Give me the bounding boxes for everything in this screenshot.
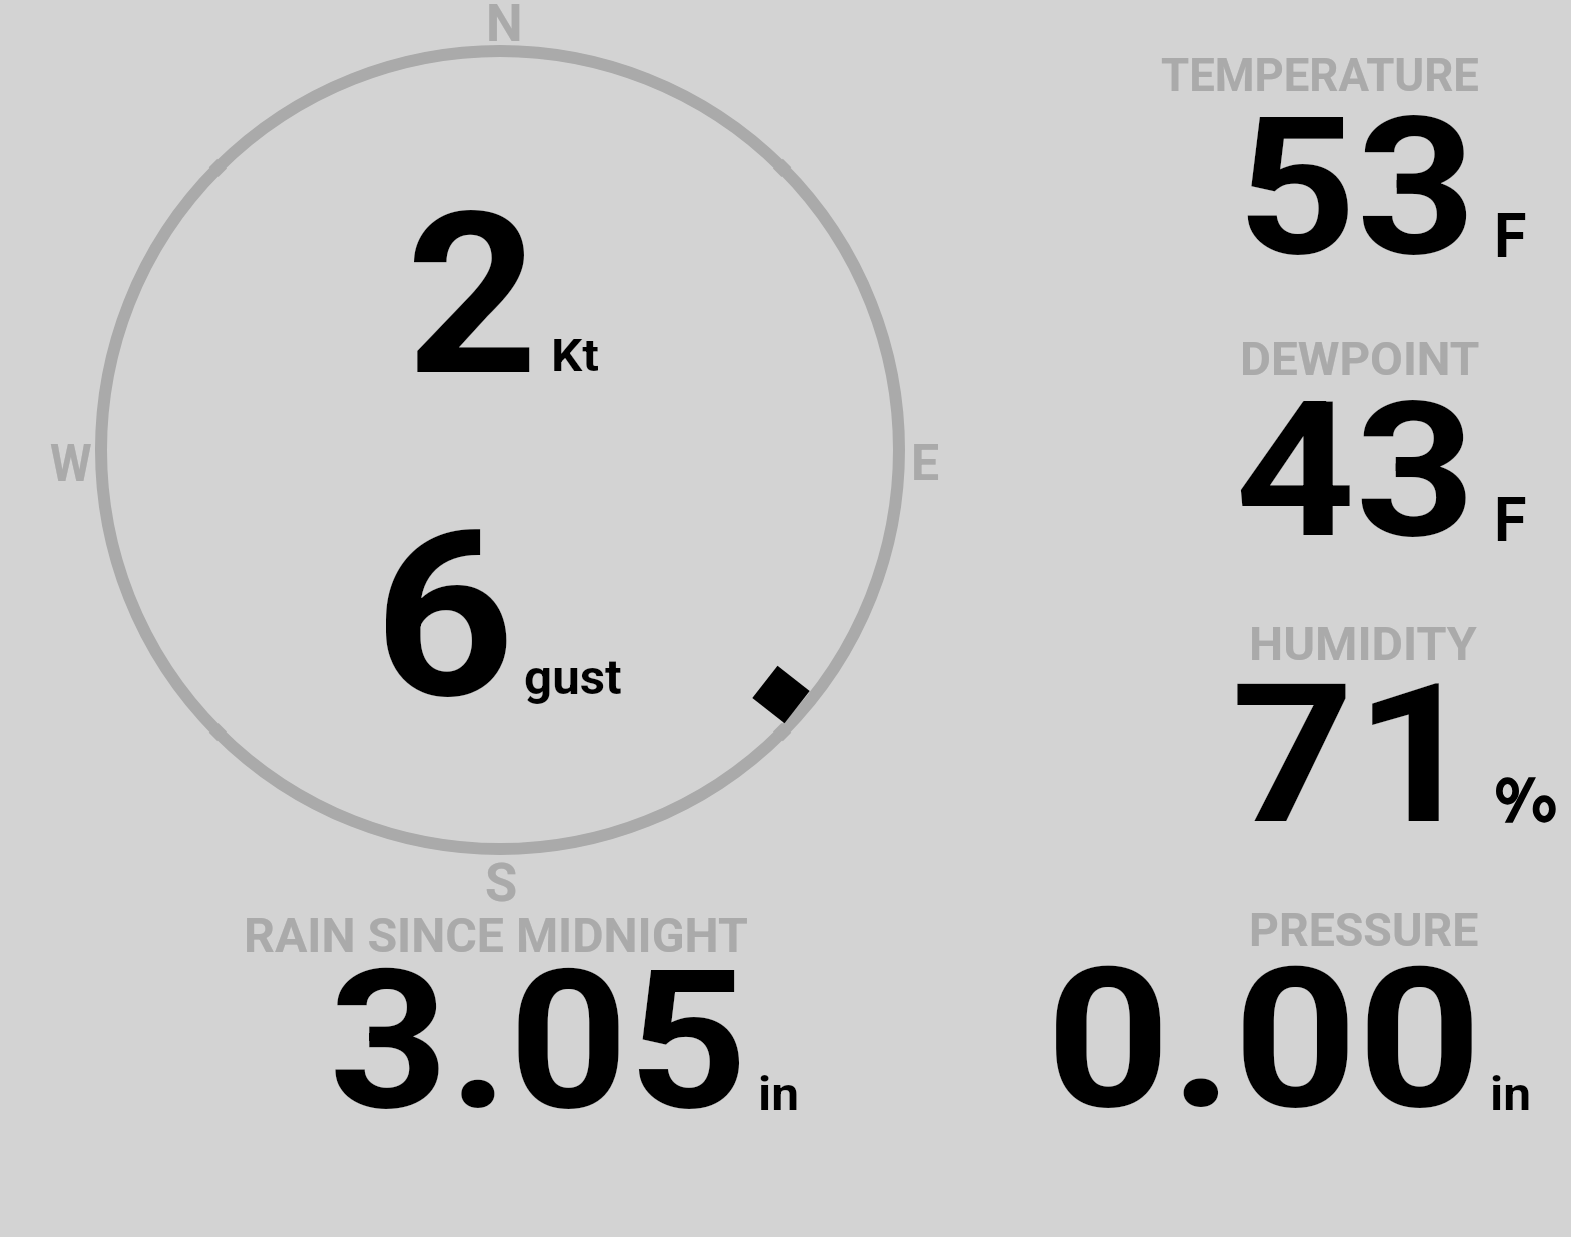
staticText: PRESSURE — [1249, 903, 1478, 957]
staticText: 6 — [374, 482, 515, 751]
staticText: 43 — [1235, 361, 1476, 581]
staticText: 2 — [406, 164, 539, 426]
staticText: gust — [524, 649, 623, 706]
staticText: HUMIDITY — [1249, 617, 1477, 671]
button[interactable]: Rain since midnight 3.05 inches — [180, 875, 840, 1150]
staticText: N — [486, 0, 523, 54]
button[interactable]: Temperature 53 degrees Fahrenheit — [1000, 20, 1571, 285]
staticText: TEMPERATURE — [1161, 49, 1480, 103]
button[interactable]: Pressure 0.00 inches — [1000, 875, 1571, 1150]
staticText: 0.00 — [1046, 925, 1483, 1154]
staticText: F — [1494, 485, 1527, 556]
staticText: F — [1494, 201, 1527, 272]
staticText: RAIN SINCE MIDNIGHT — [244, 908, 748, 963]
staticText: in — [758, 1067, 800, 1122]
staticText: S — [485, 851, 517, 914]
staticText: 3.05 — [329, 928, 748, 1155]
button[interactable]: Wind 2 knots gusting 6, south-east — [56, 0, 944, 910]
button[interactable]: Dew point 43 degrees Fahrenheit — [1000, 305, 1571, 570]
staticText: Kt — [551, 329, 599, 382]
staticText: 53 — [1237, 76, 1477, 299]
staticText: E — [911, 433, 940, 492]
staticText: W — [50, 433, 92, 493]
staticText: DEWPOINT — [1240, 333, 1480, 386]
staticText: in — [1490, 1067, 1532, 1122]
button[interactable]: Humidity 71 percent — [1000, 590, 1571, 855]
staticText: 71 — [1231, 641, 1479, 868]
